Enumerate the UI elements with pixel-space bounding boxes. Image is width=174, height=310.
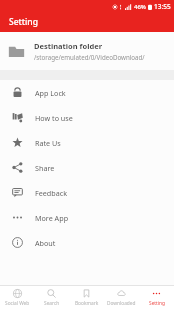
staticText: Setting: [149, 300, 165, 307]
button[interactable]: Destination folder: [0, 32, 174, 70]
staticText: Feedback: [35, 188, 67, 198]
staticText: /storage/emulated/0/VideoDownload/: [34, 53, 145, 61]
staticText: Setting: [9, 16, 38, 28]
button[interactable]: App Lock: [0, 80, 174, 105]
button[interactable]: Setting: [139, 286, 174, 310]
staticText: Social Web: [5, 300, 30, 307]
staticText: Search: [44, 300, 60, 307]
staticText: Destination folder: [34, 41, 103, 51]
staticText: How to use: [35, 113, 73, 123]
staticText: About: [35, 238, 56, 248]
staticText: Downloaded: [107, 300, 136, 307]
button[interactable]: Rate Us: [0, 130, 174, 155]
staticText: 13:55: [154, 2, 171, 11]
staticText: 46%: [134, 3, 146, 11]
staticText: Rate Us: [35, 138, 61, 148]
button[interactable]: Social Web: [0, 286, 34, 310]
button[interactable]: Search: [34, 286, 69, 310]
button[interactable]: Setting: [0, 12, 174, 32]
button[interactable]: How to use: [0, 105, 174, 130]
staticText: Share: [35, 163, 55, 173]
button[interactable]: Share: [0, 155, 174, 180]
button[interactable]: More App: [0, 205, 174, 230]
staticText: Bookmark: [75, 300, 99, 307]
button[interactable]: Bookmark: [69, 286, 104, 310]
button[interactable]: About: [0, 230, 174, 255]
staticText: More App: [35, 213, 69, 223]
button[interactable]: Feedback: [0, 180, 174, 205]
staticText: App Lock: [35, 88, 66, 98]
button[interactable]: Downloaded: [104, 286, 139, 310]
